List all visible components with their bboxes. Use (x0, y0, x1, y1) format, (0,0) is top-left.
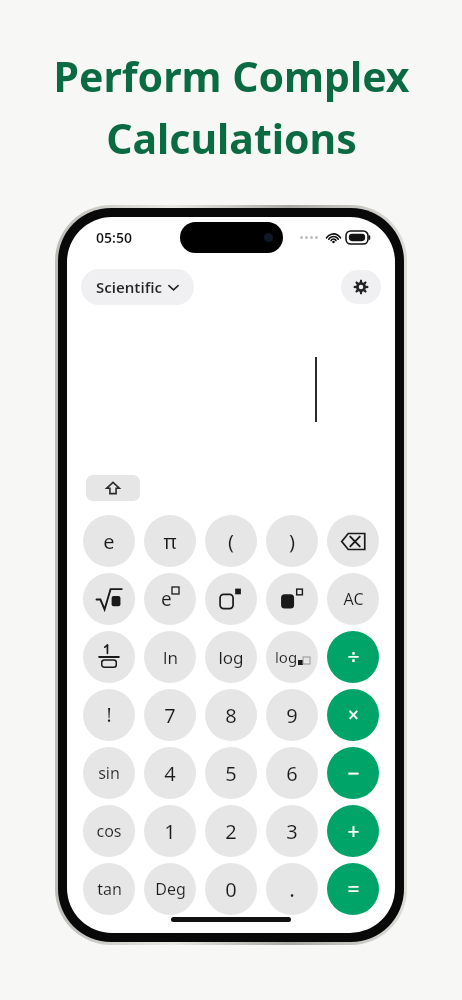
staticText: ln (163, 646, 178, 669)
staticText: 0 (225, 876, 237, 903)
button[interactable]: 5 (205, 747, 257, 799)
staticText: 05:50 (96, 228, 132, 247)
staticText: × (348, 702, 359, 728)
staticText: 1 (164, 818, 176, 845)
button[interactable]: Reciprocal (83, 631, 135, 683)
button[interactable]: tan (83, 863, 135, 915)
button[interactable]: 1 (144, 805, 196, 857)
staticText: ! (106, 702, 112, 728)
staticText: ( (228, 528, 234, 555)
staticText: 3 (286, 818, 298, 845)
button[interactable]: Scientific (81, 269, 194, 305)
staticText: ) (289, 528, 295, 555)
staticText: Calculations (106, 110, 357, 166)
button[interactable]: cos (83, 805, 135, 857)
staticText: π (163, 528, 177, 555)
button[interactable]: 8 (205, 689, 257, 741)
staticText: AC (343, 588, 364, 610)
button[interactable]: e to the power (144, 573, 196, 625)
button[interactable]: 7 (144, 689, 196, 741)
staticText: . (289, 875, 295, 904)
button[interactable]: π (144, 515, 196, 567)
staticText: + (347, 817, 360, 846)
button[interactable]: ) (266, 515, 318, 567)
button[interactable]: sin (83, 747, 135, 799)
button[interactable]: 4 (144, 747, 196, 799)
button[interactable]: ln (144, 631, 196, 683)
button[interactable]: . (266, 863, 318, 915)
staticText: ÷ (347, 643, 360, 672)
staticText: = (347, 875, 360, 904)
staticText: 6 (286, 760, 298, 787)
staticText: 4 (164, 760, 176, 787)
button[interactable]: × (327, 689, 379, 741)
button[interactable]: + (327, 805, 379, 857)
button[interactable]: ! (83, 689, 135, 741)
button[interactable]: Power (266, 573, 318, 625)
button[interactable]: ÷ (327, 631, 379, 683)
staticText: cos (96, 820, 122, 842)
staticText: 5 (225, 760, 237, 787)
staticText: 9 (286, 702, 298, 729)
button[interactable]: Log base (266, 631, 318, 683)
staticText: 8 (225, 702, 237, 729)
staticText: 2 (225, 818, 237, 845)
button[interactable]: ( (205, 515, 257, 567)
button[interactable]: Shift (86, 475, 140, 501)
button[interactable]: 3 (266, 805, 318, 857)
staticText: sin (98, 762, 120, 784)
button[interactable]: e (83, 515, 135, 567)
button[interactable]: = (327, 863, 379, 915)
button[interactable]: 0 (205, 863, 257, 915)
button[interactable]: Deg (144, 863, 196, 915)
staticText: Scientific (96, 277, 163, 297)
staticText: − (347, 759, 360, 788)
button[interactable]: Backspace (327, 515, 379, 567)
button[interactable]: 9 (266, 689, 318, 741)
button[interactable]: log (205, 631, 257, 683)
staticText: 7 (164, 702, 176, 729)
staticText: e (103, 528, 115, 555)
button[interactable]: Square (205, 573, 257, 625)
staticText: Perform Complex (53, 48, 410, 104)
button[interactable]: 6 (266, 747, 318, 799)
staticText: tan (97, 878, 122, 900)
button[interactable]: Square root (83, 573, 135, 625)
staticText: Deg (155, 878, 186, 900)
staticText: log (218, 646, 244, 669)
staticText: e (161, 586, 172, 612)
button[interactable]: Settings (341, 270, 381, 304)
button[interactable]: − (327, 747, 379, 799)
button[interactable]: AC (327, 573, 379, 625)
button[interactable]: 2 (205, 805, 257, 857)
staticText: log (275, 647, 298, 667)
